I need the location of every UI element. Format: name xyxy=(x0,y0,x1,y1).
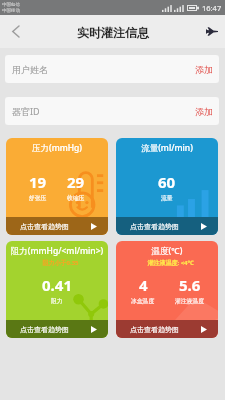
button[interactable]: 用户姓名 xyxy=(5,55,219,83)
staticText: 灌注液温度 xyxy=(175,297,204,304)
staticText: 点击查看趋势图 xyxy=(20,325,69,334)
staticText: 温度(℃) xyxy=(117,245,217,257)
staticText: 19 xyxy=(29,172,47,192)
button[interactable]: Airplane mode xyxy=(199,15,225,48)
staticText: 中国移动 xyxy=(2,8,20,14)
staticText: 阻力小于0.35 xyxy=(13,259,108,267)
staticText: 用户姓名 xyxy=(12,64,48,75)
staticText: 添加 xyxy=(195,106,213,117)
staticText: 流量 xyxy=(161,194,173,201)
staticText: 点击查看趋势图 xyxy=(20,222,69,231)
button[interactable]: 压力(mmHg) xyxy=(6,138,108,235)
staticText: 灌注液温度: <4℃ xyxy=(123,259,218,267)
staticText: 中国电信 xyxy=(2,2,20,8)
staticText: 点击查看趋势图 xyxy=(130,325,179,334)
staticText: 点击查看趋势图 xyxy=(130,222,179,231)
staticText: 舒张压 xyxy=(29,194,47,201)
staticText: 冰盒温度 xyxy=(131,297,155,304)
staticText: 压力(mmHg) xyxy=(7,142,107,154)
staticText: 收缩压 xyxy=(67,194,85,201)
staticText: 阻力 xyxy=(51,297,63,304)
staticText: 0.41 xyxy=(42,275,72,295)
staticText: 实时灌注信息 xyxy=(77,25,149,40)
button[interactable]: 温度(℃) xyxy=(116,241,218,338)
staticText: 添加 xyxy=(195,64,213,75)
button[interactable]: Back xyxy=(0,15,31,48)
staticText: 60 xyxy=(158,172,176,192)
staticText: 器官ID xyxy=(12,105,40,117)
staticText: 流量(ml/min) xyxy=(117,142,217,154)
button[interactable]: 阻力(mmHg/<ml/min>) xyxy=(6,241,108,338)
staticText: 29 xyxy=(67,172,85,192)
staticText: 5.6 xyxy=(179,275,201,295)
staticText: 16:47 xyxy=(202,3,222,13)
staticText: 4 xyxy=(139,275,148,295)
button[interactable]: 器官ID xyxy=(5,97,219,125)
staticText: 阻力(mmHg/<ml/min>) xyxy=(7,245,107,257)
button[interactable]: 流量(ml/min) xyxy=(116,138,218,235)
